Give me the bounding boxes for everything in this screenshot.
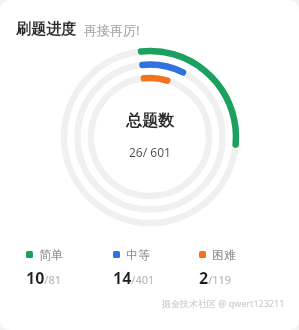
button[interactable]: 简单	[26, 245, 113, 291]
button[interactable]: 刷题进度	[16, 20, 299, 39]
staticText: 10/81	[26, 267, 61, 289]
button[interactable]: 中等	[113, 245, 199, 291]
staticText: 26/ 601	[129, 144, 171, 160]
staticText: 中等	[126, 247, 150, 262]
staticText: 总题数	[126, 111, 174, 131]
staticText: 14/401	[113, 267, 155, 289]
button[interactable]: 困难	[199, 245, 285, 291]
staticText: 掘金技术社区 @ qwert123211	[162, 297, 285, 309]
button[interactable]: 刷题进度环形图	[57, 44, 243, 230]
staticText: 2/119	[199, 267, 232, 289]
staticText: 再接再厉!	[84, 21, 140, 39]
staticText: 困难	[212, 247, 236, 262]
staticText: 简单	[39, 247, 63, 262]
staticText: 刷题进度	[16, 20, 76, 39]
